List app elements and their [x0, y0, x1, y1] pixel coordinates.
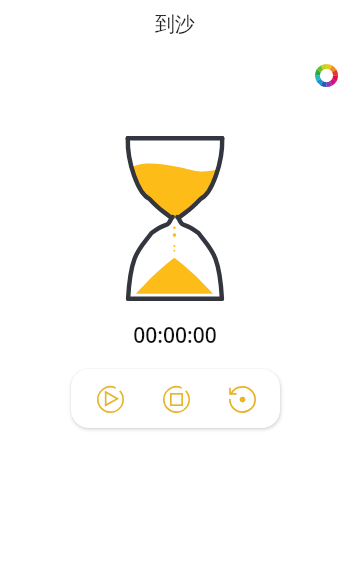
staticText: 00:00:00 — [133, 321, 217, 350]
staticText: 到沙 — [155, 12, 195, 37]
button[interactable]: Start — [93, 382, 127, 416]
button[interactable]: Stop — [159, 382, 193, 416]
button[interactable]: Theme colour — [303, 52, 349, 98]
button[interactable]: Reset — [225, 382, 259, 416]
